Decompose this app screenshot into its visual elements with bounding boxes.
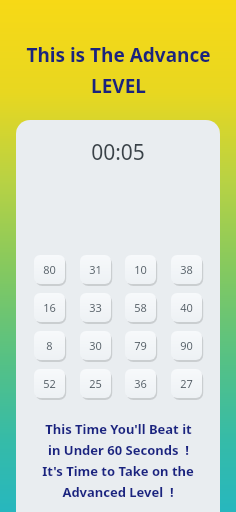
button[interactable]: 90 [171, 331, 202, 360]
staticText: 00:05 [91, 138, 145, 167]
button[interactable]: 38 [171, 255, 202, 284]
button[interactable]: 30 [80, 331, 111, 360]
button[interactable]: 25 [80, 369, 111, 398]
button[interactable]: 52 [34, 369, 65, 398]
staticText: 30 [89, 338, 102, 353]
staticText: 33 [89, 300, 102, 315]
button[interactable]: 27 [171, 369, 202, 398]
staticText: 80 [43, 262, 56, 277]
staticText: 31 [89, 262, 102, 277]
staticText: 40 [180, 300, 193, 315]
staticText: 90 [180, 338, 193, 353]
staticText: 79 [134, 338, 147, 353]
staticText: 27 [180, 376, 193, 391]
staticText: in Under 60 Seconds ! [48, 441, 189, 459]
staticText: 16 [43, 300, 56, 315]
button[interactable]: 36 [125, 369, 156, 398]
button[interactable]: 33 [80, 293, 111, 322]
staticText: 25 [89, 376, 102, 391]
button[interactable]: 31 [80, 255, 111, 284]
staticText: 58 [134, 300, 147, 315]
button[interactable]: 80 [34, 255, 65, 284]
staticText: 8 [46, 338, 53, 353]
staticText: It's Time to Take on the [42, 462, 194, 480]
button[interactable]: 10 [125, 255, 156, 284]
staticText: 38 [180, 262, 193, 277]
staticText: Advanced Level ! [62, 483, 174, 501]
button[interactable]: 40 [171, 293, 202, 322]
staticText: This Time You'll Beat it [45, 420, 192, 438]
staticText: 52 [43, 376, 56, 391]
button[interactable]: 8 [34, 331, 65, 360]
staticText: 36 [134, 376, 147, 391]
staticText: This is The Advance [26, 42, 211, 68]
button[interactable]: 16 [34, 293, 65, 322]
staticText: 10 [134, 262, 147, 277]
button[interactable]: 79 [125, 331, 156, 360]
button[interactable]: 58 [125, 293, 156, 322]
staticText: LEVEL [91, 73, 146, 99]
